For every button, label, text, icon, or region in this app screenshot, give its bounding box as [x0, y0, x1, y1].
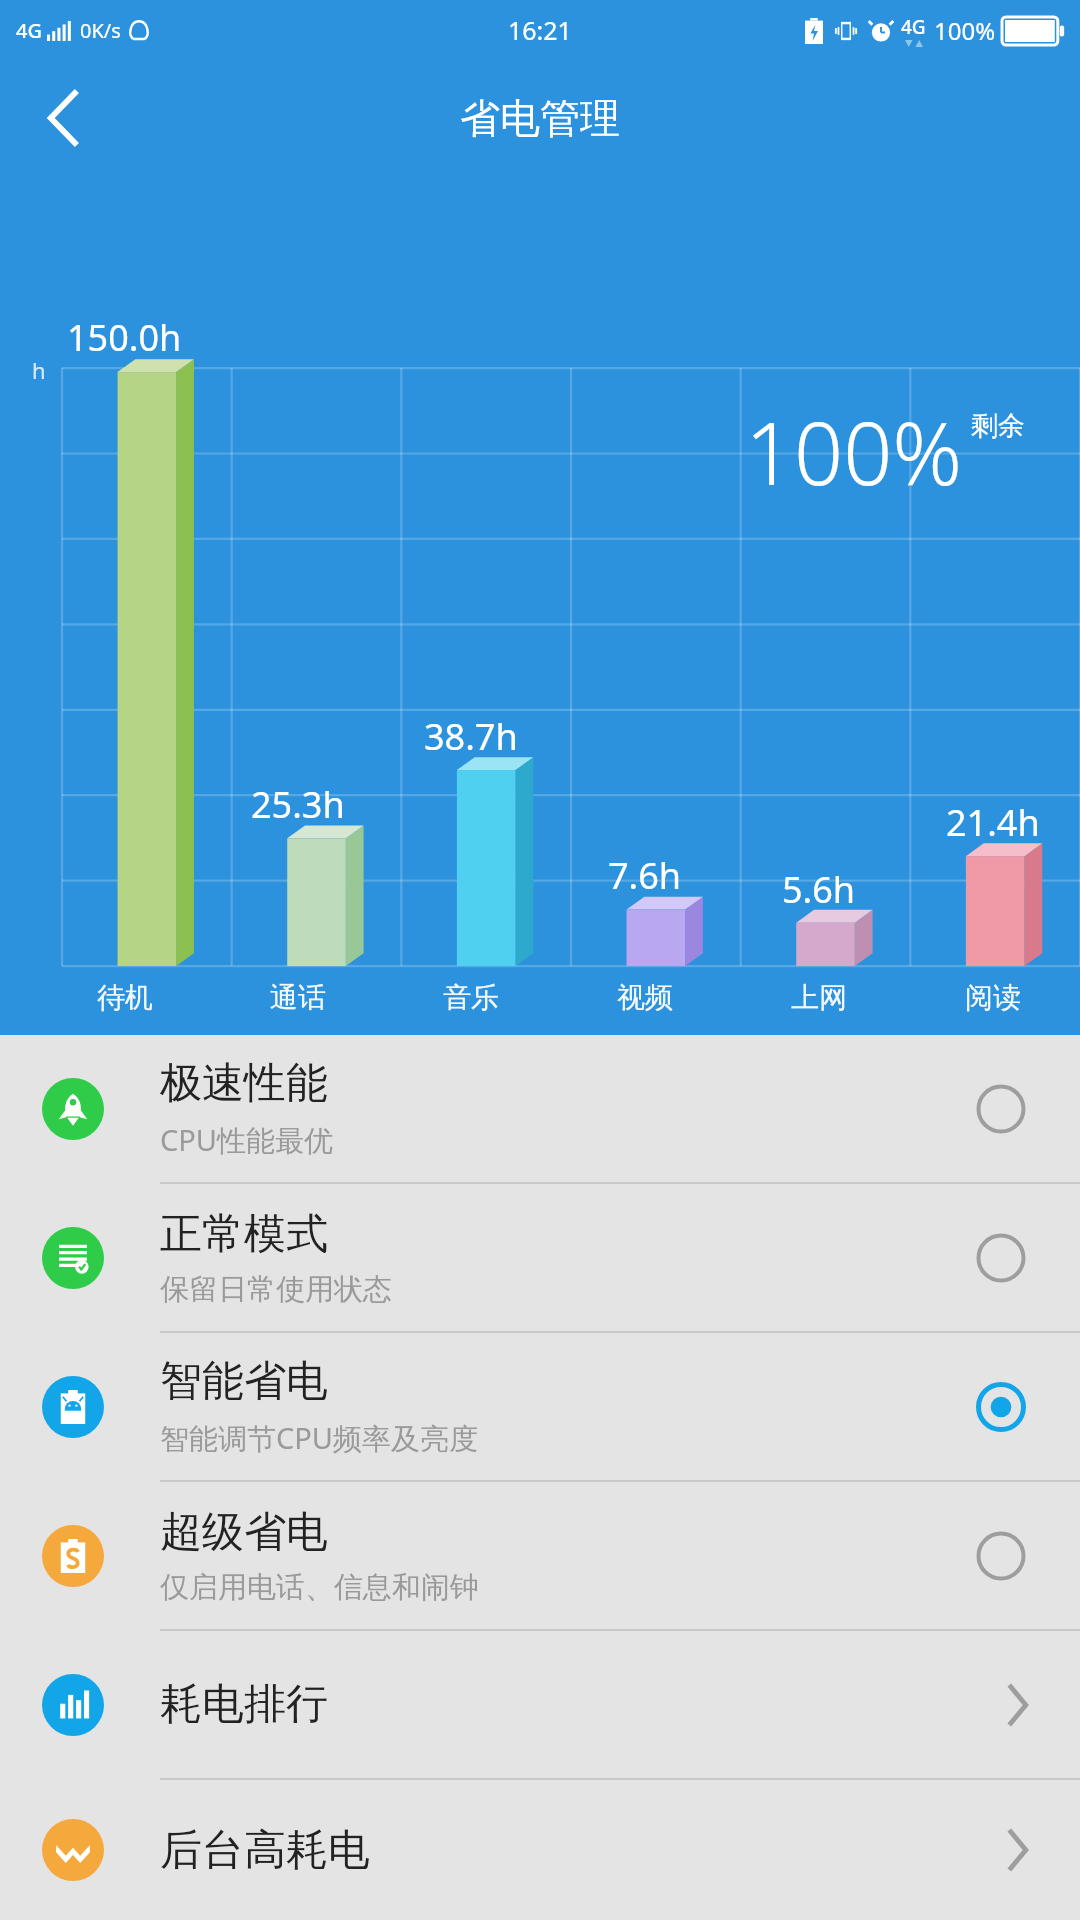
- button[interactable]: 后台高耗电: [0, 1780, 1080, 1920]
- staticText: 极速性能: [160, 1057, 328, 1110]
- staticText: 视频: [617, 980, 673, 1015]
- staticText: 100%: [934, 14, 996, 47]
- staticText: 省电管理: [460, 93, 620, 143]
- staticText: 正常模式: [160, 1208, 328, 1261]
- staticText: 仅启用电话、信息和闹钟: [160, 1569, 479, 1606]
- staticText: 智能省电: [160, 1355, 328, 1408]
- staticText: 阅读: [965, 980, 1021, 1015]
- staticText: 待机: [97, 980, 153, 1015]
- staticText: 后台高耗电: [160, 1824, 1006, 1877]
- staticText: 150.0h: [67, 313, 182, 362]
- staticText: h: [32, 355, 46, 385]
- staticText: 4G: [901, 14, 926, 40]
- staticText: 21.4h: [946, 798, 1040, 847]
- button[interactable]: Back: [30, 83, 100, 153]
- staticText: 上网: [791, 980, 847, 1015]
- button[interactable]: 耗电排行: [0, 1631, 1080, 1778]
- button[interactable]: 极速性能: [0, 1035, 1080, 1182]
- staticText: 通话: [270, 980, 326, 1015]
- staticText: 超级省电: [160, 1506, 328, 1559]
- button[interactable]: 智能省电: [0, 1333, 1080, 1480]
- staticText: 7.6h: [608, 851, 682, 900]
- staticText: 38.7h: [424, 712, 518, 761]
- staticText: 音乐: [443, 980, 499, 1015]
- staticText: 100%: [745, 393, 963, 510]
- staticText: CPU性能最优: [160, 1120, 334, 1160]
- staticText: 16:21: [508, 13, 572, 47]
- button[interactable]: 超级省电: [0, 1482, 1080, 1629]
- staticText: 耗电排行: [160, 1678, 1006, 1731]
- button[interactable]: 正常模式: [0, 1184, 1080, 1331]
- staticText: 保留日常使用状态: [160, 1271, 392, 1308]
- staticText: 25.3h: [251, 780, 345, 829]
- staticText: 5.6h: [782, 865, 856, 914]
- staticText: 4G: [16, 17, 42, 44]
- staticText: 智能调节CPU频率及亮度: [160, 1418, 479, 1458]
- staticText: 剩余: [971, 409, 1025, 443]
- staticText: 0K/s: [80, 17, 121, 44]
